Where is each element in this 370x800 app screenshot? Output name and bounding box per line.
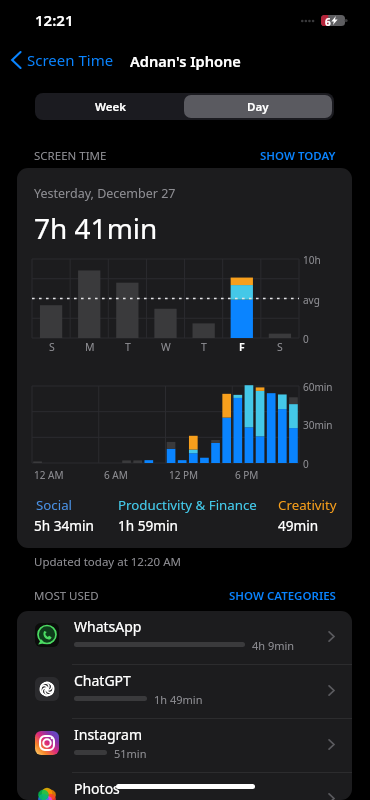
staticText: SHOW CATEGORIES — [229, 588, 336, 604]
staticText: 6 PM — [235, 468, 259, 482]
staticText: S — [277, 340, 283, 354]
staticText: avg — [303, 293, 320, 307]
staticText: 10h — [303, 253, 321, 267]
staticText: 12 AM — [34, 468, 64, 482]
staticText: Social — [36, 496, 73, 514]
staticText: 60min — [303, 380, 333, 394]
staticText: 49min — [278, 516, 319, 535]
staticText: Instagram — [74, 725, 143, 744]
staticText: Creativity — [278, 496, 337, 514]
staticText: 0 — [303, 332, 309, 346]
staticText: M — [85, 340, 95, 354]
staticText: 6 — [325, 15, 331, 26]
staticText: 30min — [303, 418, 333, 432]
staticText: Week — [95, 99, 126, 115]
button[interactable]: Week — [37, 95, 184, 118]
staticText: Yesterday, December 27 — [34, 185, 176, 202]
staticText: 1h 59min — [118, 516, 178, 535]
staticText: 4h 9min — [252, 638, 295, 653]
staticText: SCREEN TIME — [34, 148, 107, 164]
button[interactable]: Day — [184, 95, 332, 118]
button[interactable]: SHOW CATEGORIES — [229, 588, 336, 604]
staticText: 1h 49min — [154, 692, 203, 707]
button[interactable]: SHOW TODAY — [260, 148, 336, 164]
staticText: ChatGPT — [74, 671, 131, 690]
staticText: 12 PM — [169, 468, 199, 482]
staticText: 12:21 — [35, 10, 74, 30]
staticText: Day — [247, 99, 269, 115]
staticText: 5h 34min — [34, 516, 94, 535]
staticText: Adnan's Iphone — [130, 51, 241, 71]
staticText: 7h 41min — [34, 209, 158, 247]
staticText: F — [239, 340, 245, 354]
staticText: 6 AM — [104, 468, 128, 482]
staticText: Updated today at 12:20 AM — [34, 554, 181, 570]
staticText: Photos — [74, 779, 120, 798]
button[interactable]: ChatGPT — [17, 665, 352, 719]
staticText: W — [161, 340, 171, 354]
staticText: SHOW TODAY — [260, 148, 336, 164]
button[interactable]: Screen Time — [6, 47, 118, 73]
button[interactable]: Photos — [17, 773, 352, 800]
staticText: 0 — [303, 457, 309, 471]
staticText: WhatsApp — [74, 617, 142, 636]
staticText: Screen Time — [27, 50, 114, 70]
staticText: T — [125, 340, 131, 354]
staticText: S — [49, 340, 55, 354]
button[interactable]: Instagram — [17, 719, 352, 773]
staticText: T — [201, 340, 207, 354]
staticText: MOST USED — [34, 588, 99, 604]
staticText: 51min — [114, 746, 147, 761]
button[interactable]: WhatsApp — [17, 611, 352, 665]
staticText: Productivity & Finance — [118, 496, 257, 514]
